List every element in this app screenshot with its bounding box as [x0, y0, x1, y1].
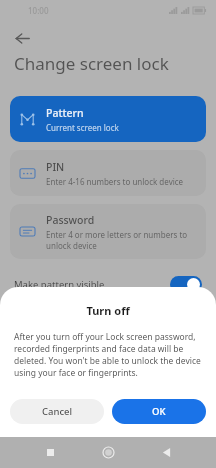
button[interactable]: Cancel [10, 399, 104, 424]
staticText: Make pattern visible [14, 278, 105, 291]
staticText: Current screen lock [46, 122, 119, 133]
button[interactable]: OK [112, 399, 206, 424]
button[interactable]: Back [8, 24, 36, 52]
staticText: Enter 4-16 numbers to unlock device [46, 176, 184, 187]
staticText: Enter 4 or more letters or numbers to un… [46, 229, 196, 251]
button[interactable]: PIN [10, 150, 206, 196]
button[interactable]: Make pattern visible [0, 269, 216, 299]
button[interactable]: Pattern [10, 96, 206, 142]
staticText: OK [152, 405, 166, 418]
staticText: Cancel [42, 405, 73, 418]
staticText: Change screen lock [14, 52, 169, 75]
staticText: PIN [46, 160, 65, 174]
button[interactable]: Recents [33, 437, 67, 468]
staticText: Pattern [46, 106, 84, 120]
button[interactable]: Back [149, 437, 183, 468]
staticText: After you turn off your Lock screen pass… [14, 331, 202, 379]
staticText: Turn off [0, 303, 216, 318]
staticText: 10:00 [28, 5, 49, 16]
staticText: Password [46, 213, 95, 227]
button[interactable]: Home [91, 437, 125, 468]
button[interactable]: Password [10, 204, 206, 259]
